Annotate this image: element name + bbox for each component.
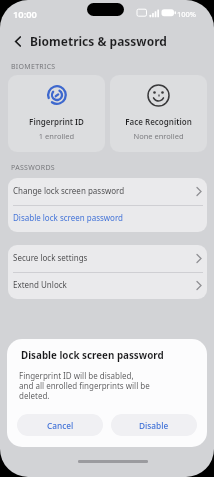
button[interactable]: Biometrics & password [8,31,208,52]
staticText: Disable lock screen password [13,212,124,223]
staticText: 100% [177,9,197,19]
staticText: PASSWORDS [11,163,55,173]
button[interactable]: Face Recognition [110,75,207,152]
button[interactable]: Cancel [17,414,103,436]
staticText: Cancel [47,420,74,431]
staticText: Secure lock settings [13,252,88,263]
button[interactable]: Fingerprint ID [8,75,105,152]
staticText: 1 enrolled [8,131,105,141]
button[interactable]: Change lock screen password [8,178,207,205]
staticText: Disable [139,420,169,431]
staticText: None enrolled [110,131,207,141]
staticText: Disable lock screen password [21,349,164,362]
staticText: Face Recognition [110,116,207,127]
staticText: Biometrics & password [30,33,167,49]
button[interactable]: Extend Unlock [8,272,207,299]
button[interactable]: Disable [111,414,197,436]
button[interactable]: Secure lock settings [8,245,207,272]
staticText: Extend Unlock [13,279,67,290]
staticText: 10:00 [13,8,37,21]
button[interactable]: Disable lock screen password [8,205,207,232]
staticText: Fingerprint ID will be disabled, and all… [19,370,150,401]
staticText: BIOMETRICS [11,62,56,72]
staticText: Change lock screen password [13,185,125,196]
staticText: Fingerprint ID [8,116,105,127]
